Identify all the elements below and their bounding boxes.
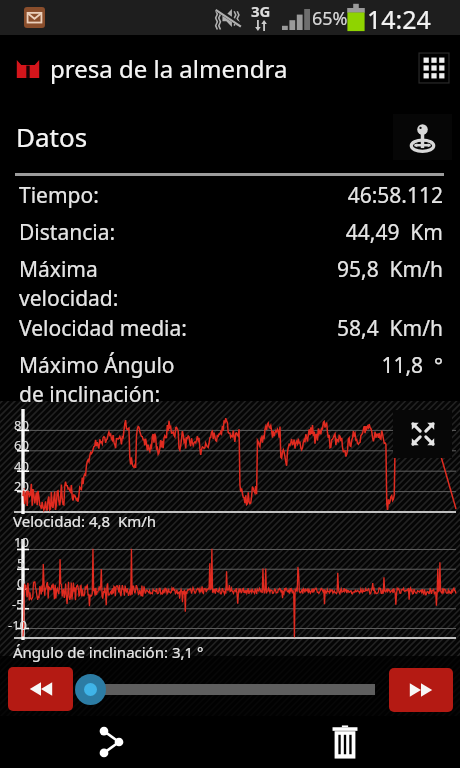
- button[interactable]: Share: [75, 716, 145, 768]
- staticText: 14:24: [367, 2, 431, 36]
- staticText: Máximo Ángulo: [19, 351, 175, 380]
- staticText: Velocidad: 4,8 Km/h: [13, 511, 157, 531]
- staticText: Máxima: [19, 255, 98, 284]
- staticText: -10: [8, 616, 28, 634]
- staticText: de inclinación:: [19, 380, 161, 409]
- staticText: 10: [14, 533, 29, 551]
- staticText: 40: [14, 457, 29, 475]
- staticText: Distancia:: [19, 218, 116, 247]
- staticText: 95,8 Km/h: [336, 255, 443, 284]
- button[interactable]: Grid view: [416, 50, 452, 86]
- staticText: -5: [12, 595, 24, 613]
- staticText: 3G: [251, 1, 271, 21]
- staticText: 46:58.112: [347, 181, 443, 210]
- staticText: 20: [14, 477, 29, 495]
- staticText: Datos: [16, 119, 88, 154]
- staticText: Velocidad media:: [19, 314, 187, 343]
- staticText: velocidad:: [19, 284, 119, 313]
- staticText: Tiempo:: [19, 181, 99, 210]
- staticText: 58,4 Km/h: [336, 314, 443, 343]
- button[interactable]: Map view: [393, 114, 452, 160]
- staticText: 65%: [312, 6, 348, 31]
- button[interactable]: Delete: [310, 716, 380, 768]
- staticText: 5: [17, 554, 25, 572]
- button[interactable]: Rewind: [8, 667, 73, 711]
- staticText: 80: [14, 416, 29, 434]
- staticText: 11,8 °: [381, 351, 443, 380]
- staticText: 0: [17, 574, 25, 592]
- staticText: Ángulo de inclinación: 3,1 °: [13, 642, 204, 662]
- staticText: 44,49 Km: [345, 218, 443, 247]
- button[interactable]: Fullscreen: [393, 410, 452, 458]
- staticText: presa de la almendra: [50, 52, 288, 85]
- staticText: 60: [14, 436, 29, 454]
- button[interactable]: Forward: [389, 668, 453, 712]
- button[interactable]: Seek position: [75, 674, 106, 705]
